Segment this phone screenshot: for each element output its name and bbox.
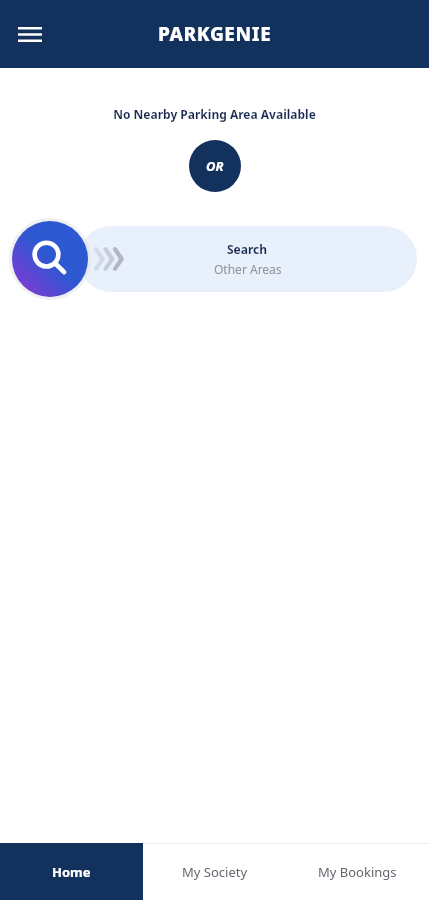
staticText: OR (206, 157, 224, 175)
button[interactable]: My Bookings (286, 843, 429, 900)
staticText: Home (52, 863, 91, 881)
button[interactable]: My Society (143, 843, 286, 900)
staticText: Other Areas (214, 261, 282, 277)
button[interactable]: OR (189, 140, 241, 192)
staticText: PARKGENIE (158, 21, 272, 47)
button[interactable]: Home (0, 843, 143, 900)
button[interactable]: Open navigation menu (8, 12, 52, 56)
staticText: My Society (182, 863, 248, 881)
other: Search other areas (12, 221, 88, 297)
staticText: My Bookings (318, 863, 397, 881)
staticText: Search (227, 241, 268, 257)
staticText: No Nearby Parking Area Available (0, 106, 429, 122)
button[interactable]: Search (0, 214, 429, 304)
